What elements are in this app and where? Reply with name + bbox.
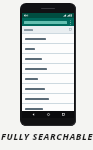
button[interactable] (25, 64, 74, 73)
other: Search (69, 28, 72, 31)
button[interactable]: More options (69, 19, 72, 26)
button[interactable] (25, 34, 74, 43)
button[interactable] (25, 94, 74, 103)
button[interactable]: Back (29, 111, 37, 118)
button[interactable]: Home (44, 111, 52, 118)
button[interactable]: Search (24, 26, 72, 33)
staticText: FULLY SEARCHABLE (1, 130, 93, 142)
button[interactable] (25, 74, 74, 83)
button[interactable] (25, 104, 74, 113)
button[interactable] (25, 54, 74, 63)
button[interactable] (25, 44, 74, 53)
button[interactable]: Recent apps (59, 111, 67, 118)
button[interactable] (25, 84, 74, 93)
